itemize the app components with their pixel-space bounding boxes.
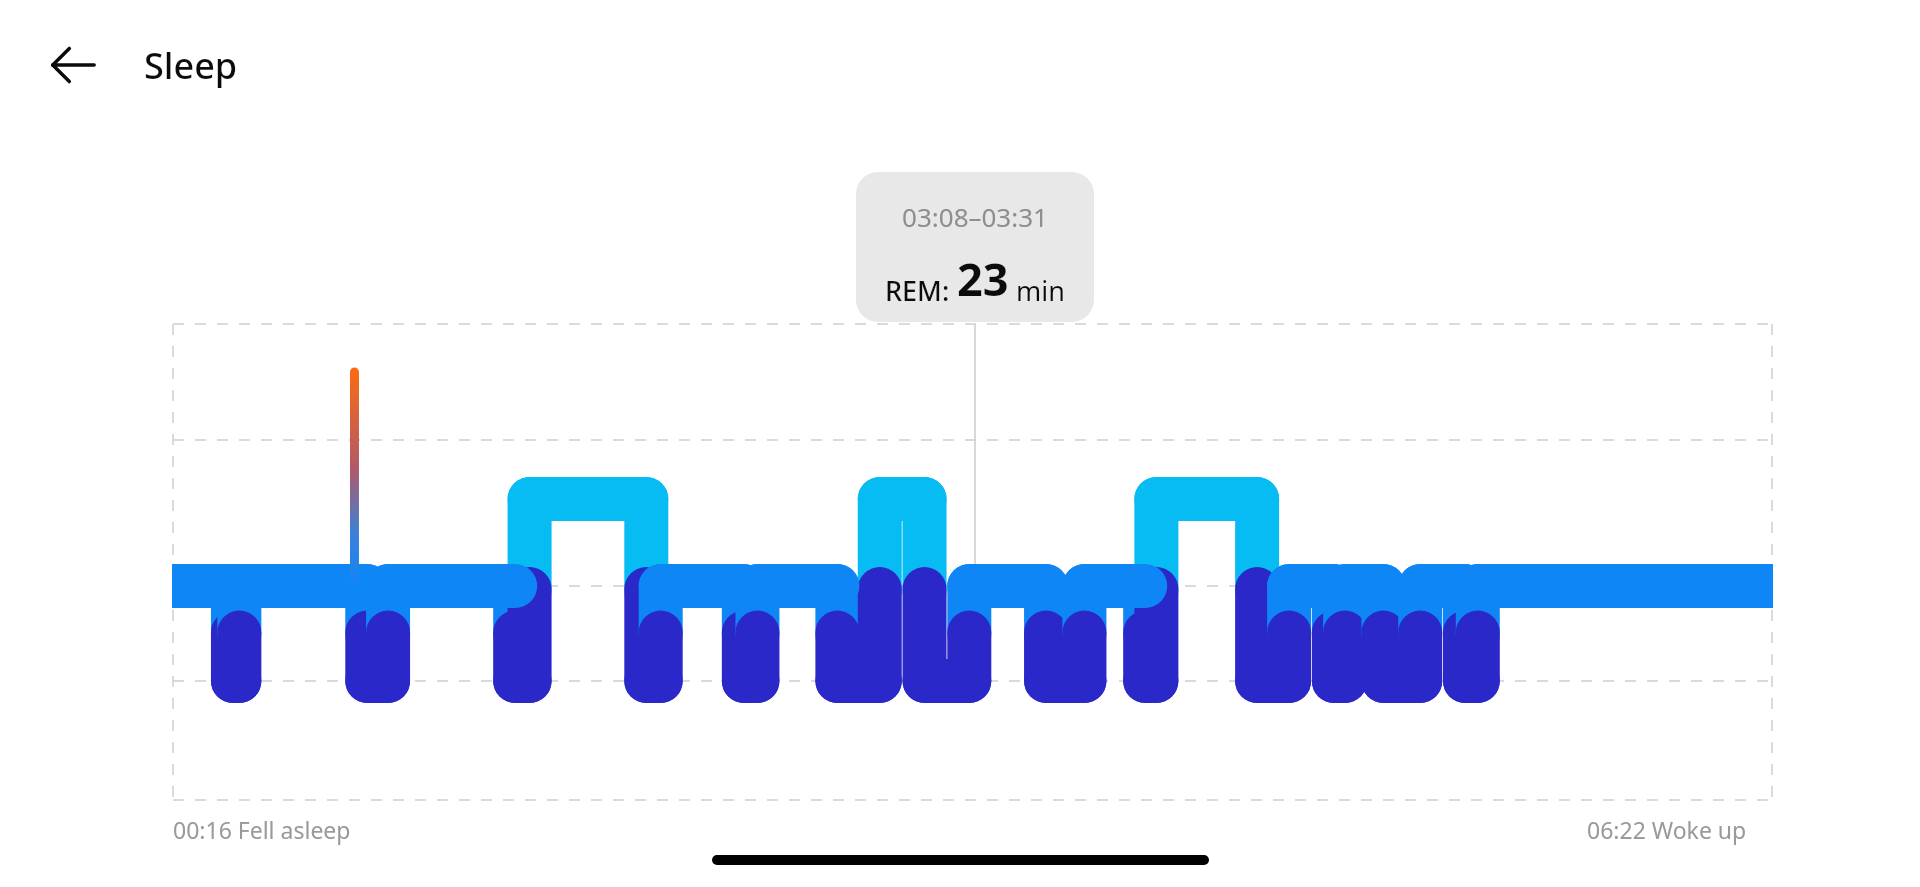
staticText: REM: xyxy=(885,272,957,309)
button[interactable]: 03:08–03:31 xyxy=(856,172,1094,322)
staticText: Sleep xyxy=(144,41,238,90)
staticText: 23 xyxy=(957,248,1009,309)
button[interactable]: Back xyxy=(40,32,106,98)
staticText: 06:22 Woke up xyxy=(1587,814,1747,845)
staticText: 00:16 Fell asleep xyxy=(173,814,351,845)
staticText: 03:08–03:31 xyxy=(902,199,1048,234)
staticText: min xyxy=(1016,272,1065,309)
